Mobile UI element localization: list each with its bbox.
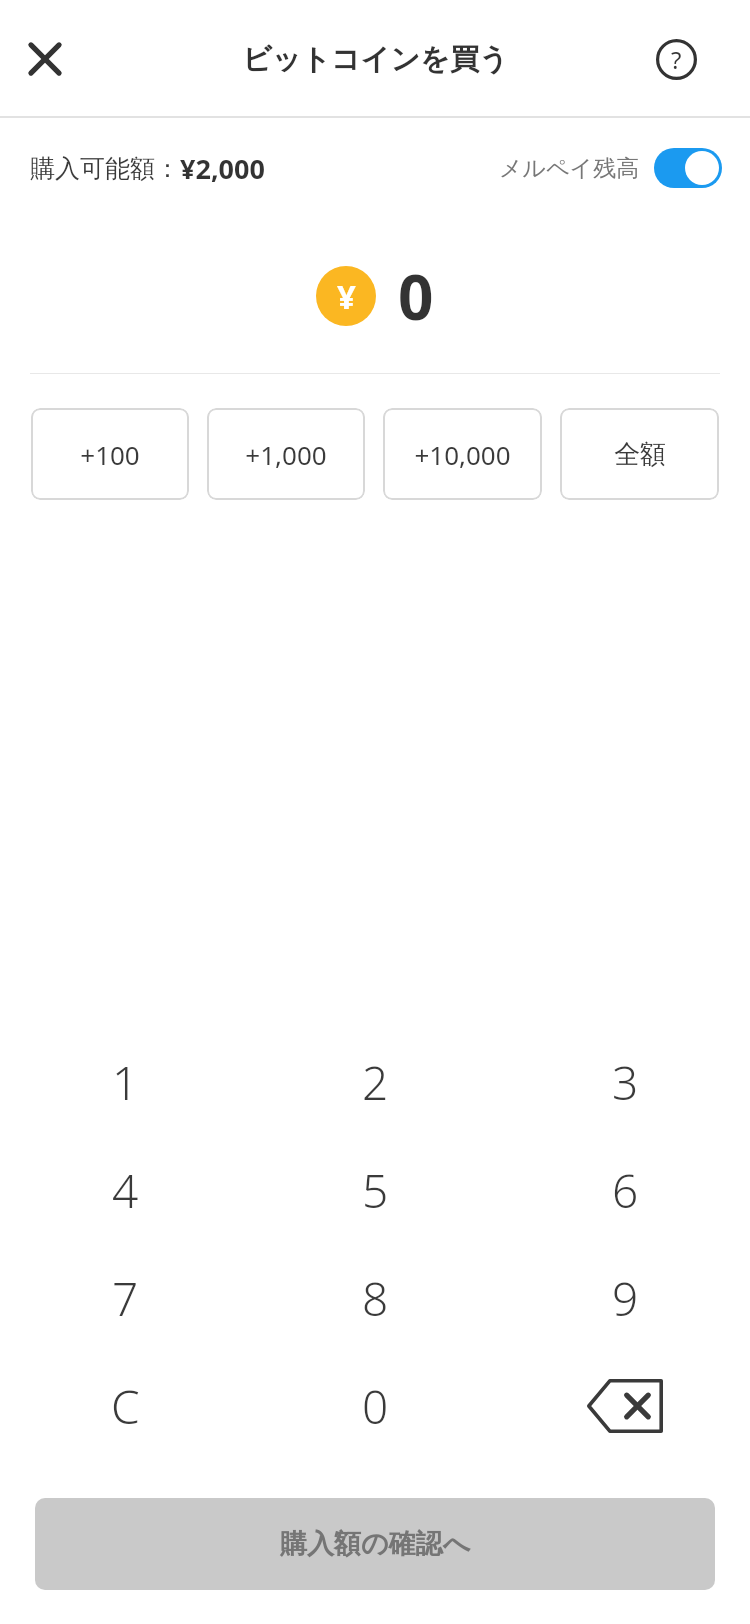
button[interactable]: +100 <box>31 408 189 500</box>
button[interactable]: 購入額の確認へ <box>35 1498 715 1590</box>
staticText: 購入可能額： <box>30 153 180 184</box>
staticText: C <box>111 1375 140 1438</box>
staticText: 全額 <box>614 438 666 471</box>
staticText: +1,000 <box>245 437 327 472</box>
staticText: ¥ <box>337 274 356 319</box>
staticText: 8 <box>362 1267 389 1330</box>
staticText: 0 <box>362 1375 389 1438</box>
staticText: +10,000 <box>414 437 511 472</box>
staticText: 1 <box>112 1051 139 1114</box>
button[interactable]: ヘルプ <box>645 28 707 90</box>
button[interactable]: 6 <box>500 1136 750 1244</box>
staticText: 購入額の確認へ <box>280 1527 471 1561</box>
staticText: 2 <box>362 1051 389 1114</box>
button[interactable]: 削除 <box>500 1352 750 1460</box>
button[interactable]: 4 <box>0 1136 250 1244</box>
button[interactable]: +1,000 <box>207 408 365 500</box>
staticText: 6 <box>612 1159 639 1222</box>
staticText: 7 <box>112 1267 139 1330</box>
button[interactable]: メルペイ残高 <box>499 148 722 188</box>
staticText: 4 <box>112 1159 139 1222</box>
button[interactable]: 3 <box>500 1028 750 1136</box>
button[interactable]: 2 <box>250 1028 500 1136</box>
staticText: ¥2,000 <box>180 150 265 187</box>
staticText: 5 <box>362 1159 389 1222</box>
button[interactable]: 7 <box>0 1244 250 1352</box>
staticText: +100 <box>80 437 140 472</box>
button[interactable]: 5 <box>250 1136 500 1244</box>
staticText: 0 <box>398 254 434 338</box>
staticText: 3 <box>612 1051 639 1114</box>
button[interactable]: 閉じる <box>11 25 79 93</box>
button[interactable]: C <box>0 1352 250 1460</box>
button[interactable]: +10,000 <box>383 408 542 500</box>
staticText: ビットコインを買う <box>242 41 509 78</box>
staticText: メルペイ残高 <box>499 154 640 183</box>
button[interactable]: 0 <box>250 1352 500 1460</box>
staticText: ? <box>671 43 682 76</box>
button[interactable]: 9 <box>500 1244 750 1352</box>
button[interactable]: 全額 <box>560 408 719 500</box>
button[interactable]: 1 <box>0 1028 250 1136</box>
staticText: 9 <box>612 1267 639 1330</box>
button[interactable]: 8 <box>250 1244 500 1352</box>
